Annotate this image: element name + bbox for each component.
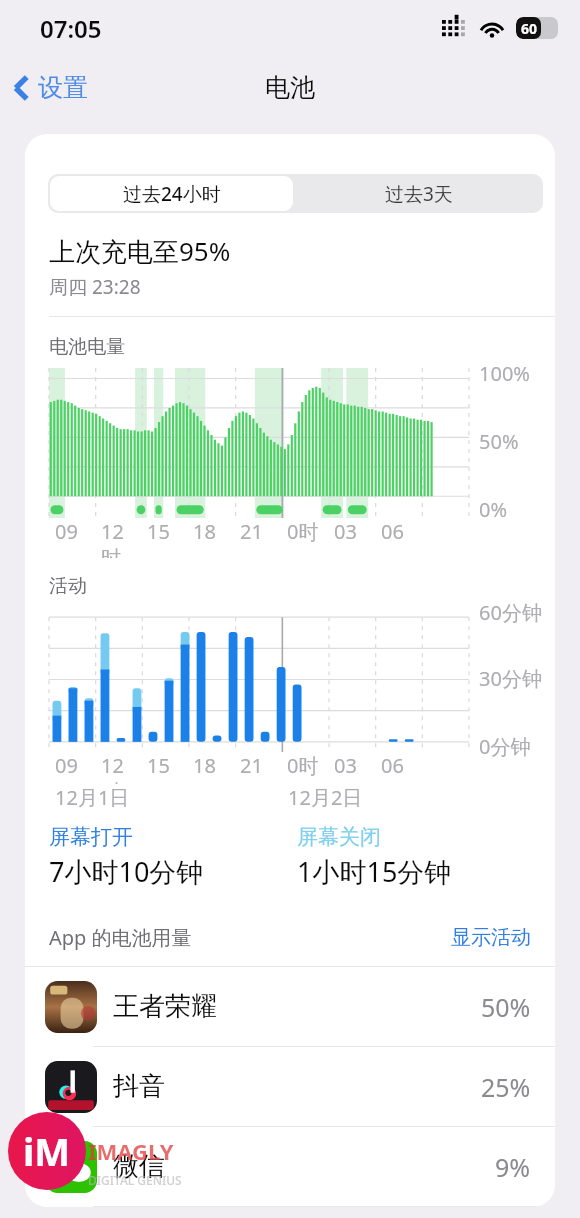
staticText: 18 — [193, 518, 216, 545]
staticText: 21 — [240, 752, 263, 779]
staticText: 抖音 — [113, 1070, 165, 1103]
staticText: 100% — [479, 360, 530, 387]
staticText: 周四 23:28 — [49, 274, 141, 300]
staticText: 15 — [147, 518, 170, 545]
staticText: DIGITAL GENIUS — [88, 1172, 182, 1188]
staticText: 18 — [193, 752, 216, 779]
staticText: 15 — [147, 752, 170, 779]
staticText: 活动 — [49, 574, 87, 598]
staticText: 过去24小时 — [123, 181, 221, 207]
staticText: 0时 — [287, 518, 319, 545]
staticText: 0% — [479, 496, 508, 523]
staticText: 过去3天 — [385, 181, 453, 207]
staticText: 50% — [479, 428, 519, 455]
button[interactable]: 显示活动 — [451, 925, 531, 950]
staticText: 09 — [55, 518, 78, 545]
staticText: 06 — [381, 518, 404, 545]
staticText: 7小时10分钟 — [49, 853, 204, 890]
staticText: 0分钟 — [479, 733, 531, 760]
staticText: 上次充电至95% — [49, 233, 231, 269]
staticText: 60分钟 — [479, 599, 542, 626]
staticText: App 的电池用量 — [49, 924, 192, 951]
staticText: 06 — [381, 752, 404, 779]
staticText: 1小时15分钟 — [297, 853, 452, 890]
staticText: 设置 — [38, 72, 88, 103]
staticText: IMAGLY — [88, 1136, 174, 1166]
staticText: 03 — [334, 752, 357, 779]
button[interactable]: 设置 — [0, 64, 102, 111]
button[interactable]: 微信 — [25, 1127, 555, 1206]
staticText: 电池 — [265, 72, 315, 103]
staticText: 电池电量 — [49, 335, 125, 359]
staticText: 0时 — [287, 752, 319, 779]
other: Wi-Fi — [479, 19, 505, 38]
staticText: 12月2日 — [288, 784, 363, 811]
staticText: 60 — [521, 19, 538, 38]
staticText: 03 — [334, 518, 357, 545]
staticText: 12时 — [101, 752, 141, 784]
button[interactable]: 抖音 — [25, 1047, 555, 1126]
staticText: iM — [23, 1125, 71, 1177]
staticText: 50% — [481, 990, 531, 1024]
staticText: 屏幕打开 — [49, 824, 133, 850]
staticText: 12月1日 — [55, 784, 130, 811]
staticText: 微信 — [113, 1150, 165, 1183]
button[interactable]: 过去24小时 — [50, 176, 293, 211]
staticText: 07:05 — [40, 12, 102, 45]
staticText: 9% — [495, 1150, 531, 1184]
button[interactable]: 过去3天 — [295, 174, 543, 213]
staticText: 30分钟 — [479, 665, 542, 692]
staticText: 显示活动 — [451, 925, 531, 950]
staticText: 王者荣耀 — [113, 990, 217, 1023]
staticText: 09 — [55, 752, 78, 779]
staticText: 21 — [240, 518, 263, 545]
staticText: 屏幕关闭 — [297, 824, 381, 850]
other: Cellular signal — [442, 20, 466, 37]
staticText: 12时 — [101, 518, 141, 558]
staticText: 25% — [481, 1070, 531, 1104]
button[interactable]: 王者荣耀 — [25, 967, 555, 1046]
